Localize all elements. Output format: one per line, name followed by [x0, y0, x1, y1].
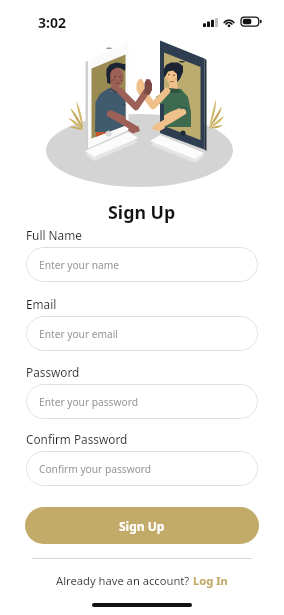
staticText: Log In [193, 573, 228, 588]
staticText: Confirm Password [26, 431, 128, 447]
staticText: Sign Up [108, 200, 176, 224]
staticText: Sign Up [119, 518, 165, 534]
button[interactable]: Sign Up [25, 507, 259, 544]
staticText: Enter your email [39, 327, 118, 341]
button[interactable]: Log In [193, 573, 228, 588]
button[interactable]: Enter your name [26, 247, 258, 282]
staticText: Password [26, 364, 80, 380]
staticText: Enter your password [39, 395, 138, 409]
staticText: Email [26, 296, 57, 312]
staticText: Already have an account? [56, 573, 193, 588]
staticText: Full Name [26, 227, 82, 243]
staticText: Confirm your password [39, 462, 152, 476]
button[interactable]: Enter your password [26, 384, 258, 419]
button[interactable]: Confirm your password [26, 451, 258, 486]
staticText: Enter your name [39, 258, 120, 272]
staticText: 3:02 [38, 13, 66, 32]
button[interactable]: Enter your email [26, 316, 258, 351]
